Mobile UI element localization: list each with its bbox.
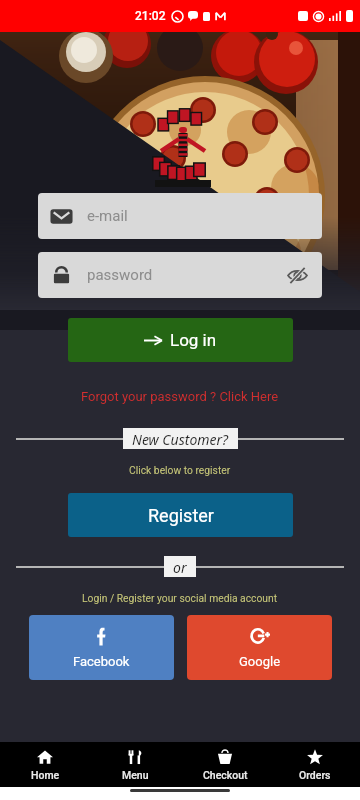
staticText: 21:02 xyxy=(135,9,166,23)
staticText: Forgot your password ? Click Here xyxy=(81,389,279,404)
staticText: password xyxy=(87,266,153,284)
button[interactable]: Register xyxy=(68,493,293,537)
staticText: Orders xyxy=(299,769,331,781)
staticText: or xyxy=(173,558,187,575)
button[interactable]: Forgot your password ? Click Here xyxy=(0,386,360,406)
staticText: Click below to register xyxy=(129,464,231,476)
staticText: Register xyxy=(148,505,214,526)
staticText: Menu xyxy=(122,769,149,781)
staticText: e-mail xyxy=(87,207,128,225)
staticText: New Customer? xyxy=(132,430,229,447)
button[interactable]: password xyxy=(38,252,322,298)
button[interactable]: Checkout xyxy=(180,742,270,787)
staticText: Log in xyxy=(170,330,217,350)
button[interactable]: Google xyxy=(187,615,332,680)
staticText: Home xyxy=(31,769,60,781)
button[interactable]: Facebook xyxy=(29,615,174,680)
button[interactable]: Orders xyxy=(270,742,360,787)
staticText: Checkout xyxy=(203,769,248,781)
staticText: Google xyxy=(239,654,281,669)
staticText: Facebook xyxy=(73,654,130,669)
button[interactable]: e-mail xyxy=(38,193,322,239)
other: Show password xyxy=(287,265,308,286)
button[interactable]: Home xyxy=(0,742,90,787)
button[interactable]: Log in xyxy=(68,318,293,362)
staticText: Login / Register your social media accou… xyxy=(82,592,278,604)
button[interactable]: Menu xyxy=(90,742,180,787)
